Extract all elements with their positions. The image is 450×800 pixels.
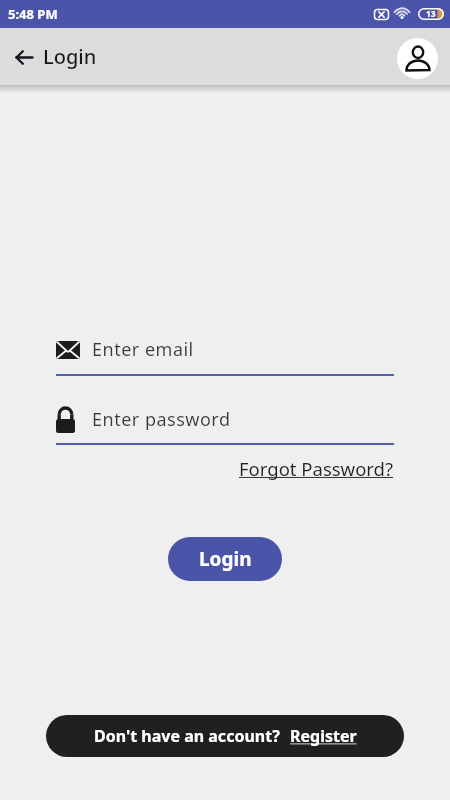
button[interactable]: Don't have an account? [46, 715, 404, 757]
button[interactable]: Forgot Password? [239, 456, 394, 481]
staticText: Register [290, 725, 357, 747]
staticText: Don't have an account? [94, 725, 280, 747]
button[interactable] [15, 48, 33, 66]
staticText: 5:48 PM [8, 5, 58, 23]
button[interactable] [397, 38, 438, 79]
staticText: Enter password [92, 407, 231, 432]
staticText: Login [199, 546, 252, 572]
staticText: Login [43, 43, 97, 70]
staticText: Enter email [92, 337, 194, 362]
staticText: 13 [426, 8, 436, 20]
button[interactable]: Login [168, 537, 282, 581]
